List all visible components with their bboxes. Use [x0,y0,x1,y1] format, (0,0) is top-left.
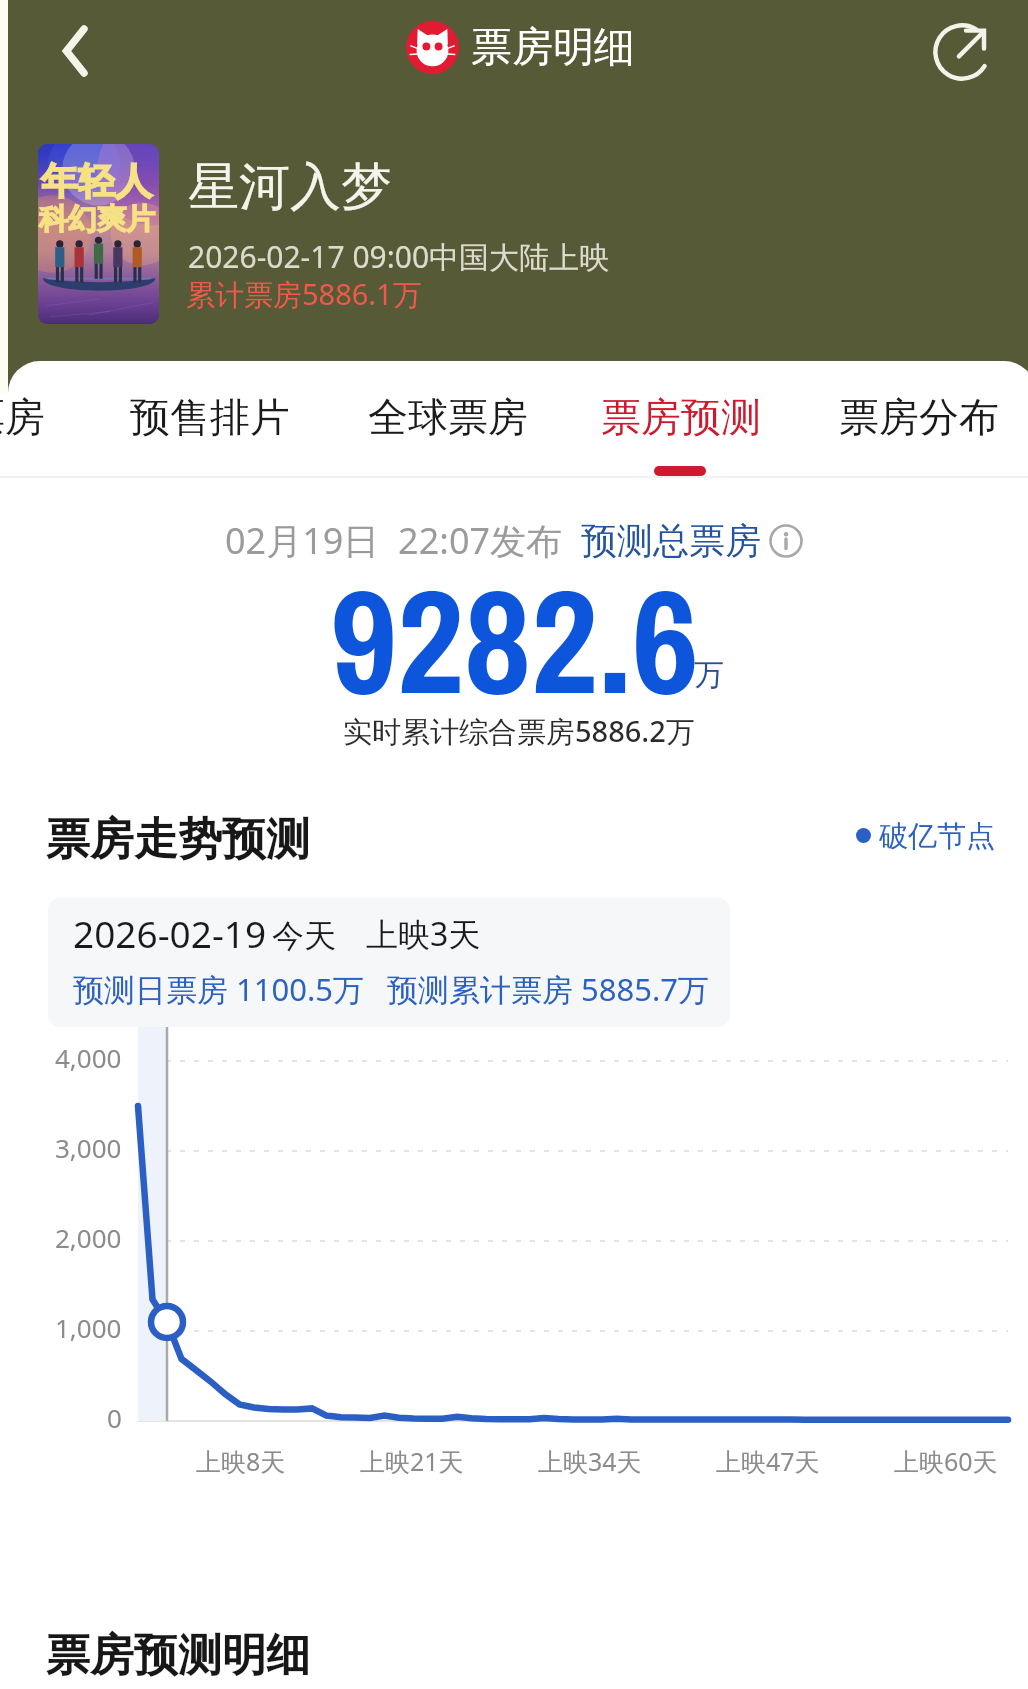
staticText: 年轻人 [41,158,152,205]
staticText: 星河入梦 [188,155,392,219]
staticText: 02月19日 22:07发布 [225,516,581,565]
button[interactable]: 全球票房 [358,373,538,461]
staticText: 票房走势预测 [46,812,310,867]
staticText: 上映34天 [538,1444,642,1478]
staticText: 上映21天 [360,1444,464,1478]
staticText: 2,000 [55,1220,122,1255]
staticText: 2026-02-17 09:00中国大陆上映 [188,236,610,277]
staticText: 2026-02-19 [73,908,267,958]
staticText: 科幻爽片 [39,201,155,238]
staticText: 3,000 [55,1130,122,1165]
staticText: 预售排片 [130,392,290,442]
staticText: 万 [694,656,724,694]
staticText: 预测日票房 1100.5万 [73,968,365,1010]
staticText: 4,000 [55,1040,122,1075]
staticText: 1,000 [55,1310,122,1345]
staticText: 上映60天 [894,1444,998,1478]
staticText: 上映47天 [716,1444,820,1478]
staticText: 9282.6 [330,541,699,739]
staticText: 今天 [272,916,336,956]
button[interactable]: 票房预测 [591,373,771,461]
button[interactable]: Share [914,4,1010,100]
staticText: 票房预测 [601,392,761,442]
button[interactable]: Back [22,3,118,99]
staticText: 上映3天 [366,912,481,956]
button[interactable]: 票房 [0,373,95,461]
staticText: 票房 [0,392,45,442]
staticText: 预测总票房 [581,518,761,563]
staticText: 预测累计票房 5885.7万 [387,968,710,1010]
staticText: 上映8天 [196,1444,286,1478]
staticText: 破亿节点 [879,818,995,855]
button[interactable]: 票房分布 [829,373,1009,461]
button[interactable]: 预售排片 [120,373,300,461]
staticText: 实时累计综合票房5886.2万 [343,711,695,751]
staticText: 票房明细 [471,22,635,74]
staticText: 票房分布 [839,392,999,442]
staticText: 票房预测明细 [46,1628,310,1683]
staticText: 累计票房5886.1万 [186,274,422,314]
staticText: 0 [107,1400,122,1435]
staticText: 全球票房 [368,392,528,442]
